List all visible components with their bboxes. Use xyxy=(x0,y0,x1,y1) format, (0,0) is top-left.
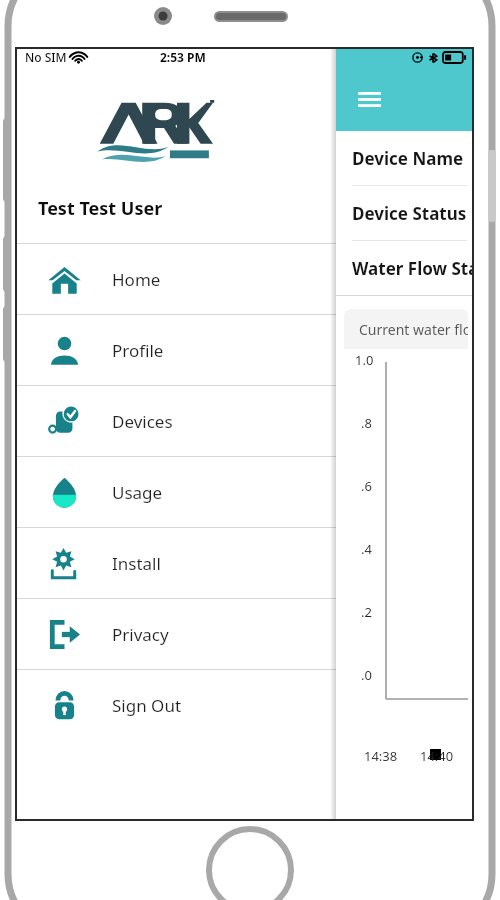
staticText: Sign Out xyxy=(112,694,182,717)
button[interactable]: Devices xyxy=(16,386,336,456)
staticText: .8 xyxy=(361,414,372,432)
staticText: 14:38 xyxy=(364,747,398,765)
staticText: 14:40 xyxy=(420,747,454,765)
staticText: Usage xyxy=(112,481,163,504)
staticText: Water Flow Status xyxy=(352,257,473,280)
staticText: Home xyxy=(112,268,161,291)
staticText: .6 xyxy=(361,477,372,495)
staticText: Device Status xyxy=(352,202,467,225)
staticText: Devices xyxy=(112,410,173,433)
button[interactable]: Sign Out xyxy=(16,670,336,740)
staticText: .2 xyxy=(361,603,372,621)
button[interactable]: Privacy xyxy=(16,599,336,669)
button[interactable]: Profile xyxy=(16,315,336,385)
staticText: No SIM xyxy=(25,49,67,65)
button[interactable]: Home xyxy=(16,244,336,314)
staticText: 1.0 xyxy=(355,351,374,369)
staticText: 2:53 PM xyxy=(160,49,206,65)
staticText: Device Name xyxy=(352,147,464,170)
staticText: .0 xyxy=(361,666,372,684)
staticText: .4 xyxy=(361,540,372,558)
button[interactable]: Install xyxy=(16,528,336,598)
staticText: Test Test User xyxy=(38,196,163,221)
staticText: Profile xyxy=(112,339,164,362)
button[interactable]: Device Name xyxy=(16,131,473,185)
staticText: Current water flow usage xyxy=(359,320,468,339)
button[interactable]: Open navigation menu xyxy=(346,76,392,122)
button[interactable]: Water Flow Status xyxy=(16,241,473,295)
staticText: Install xyxy=(112,552,161,575)
button[interactable]: Device Status xyxy=(16,186,473,240)
staticText: Privacy xyxy=(112,623,169,646)
button[interactable]: Usage xyxy=(16,457,336,527)
